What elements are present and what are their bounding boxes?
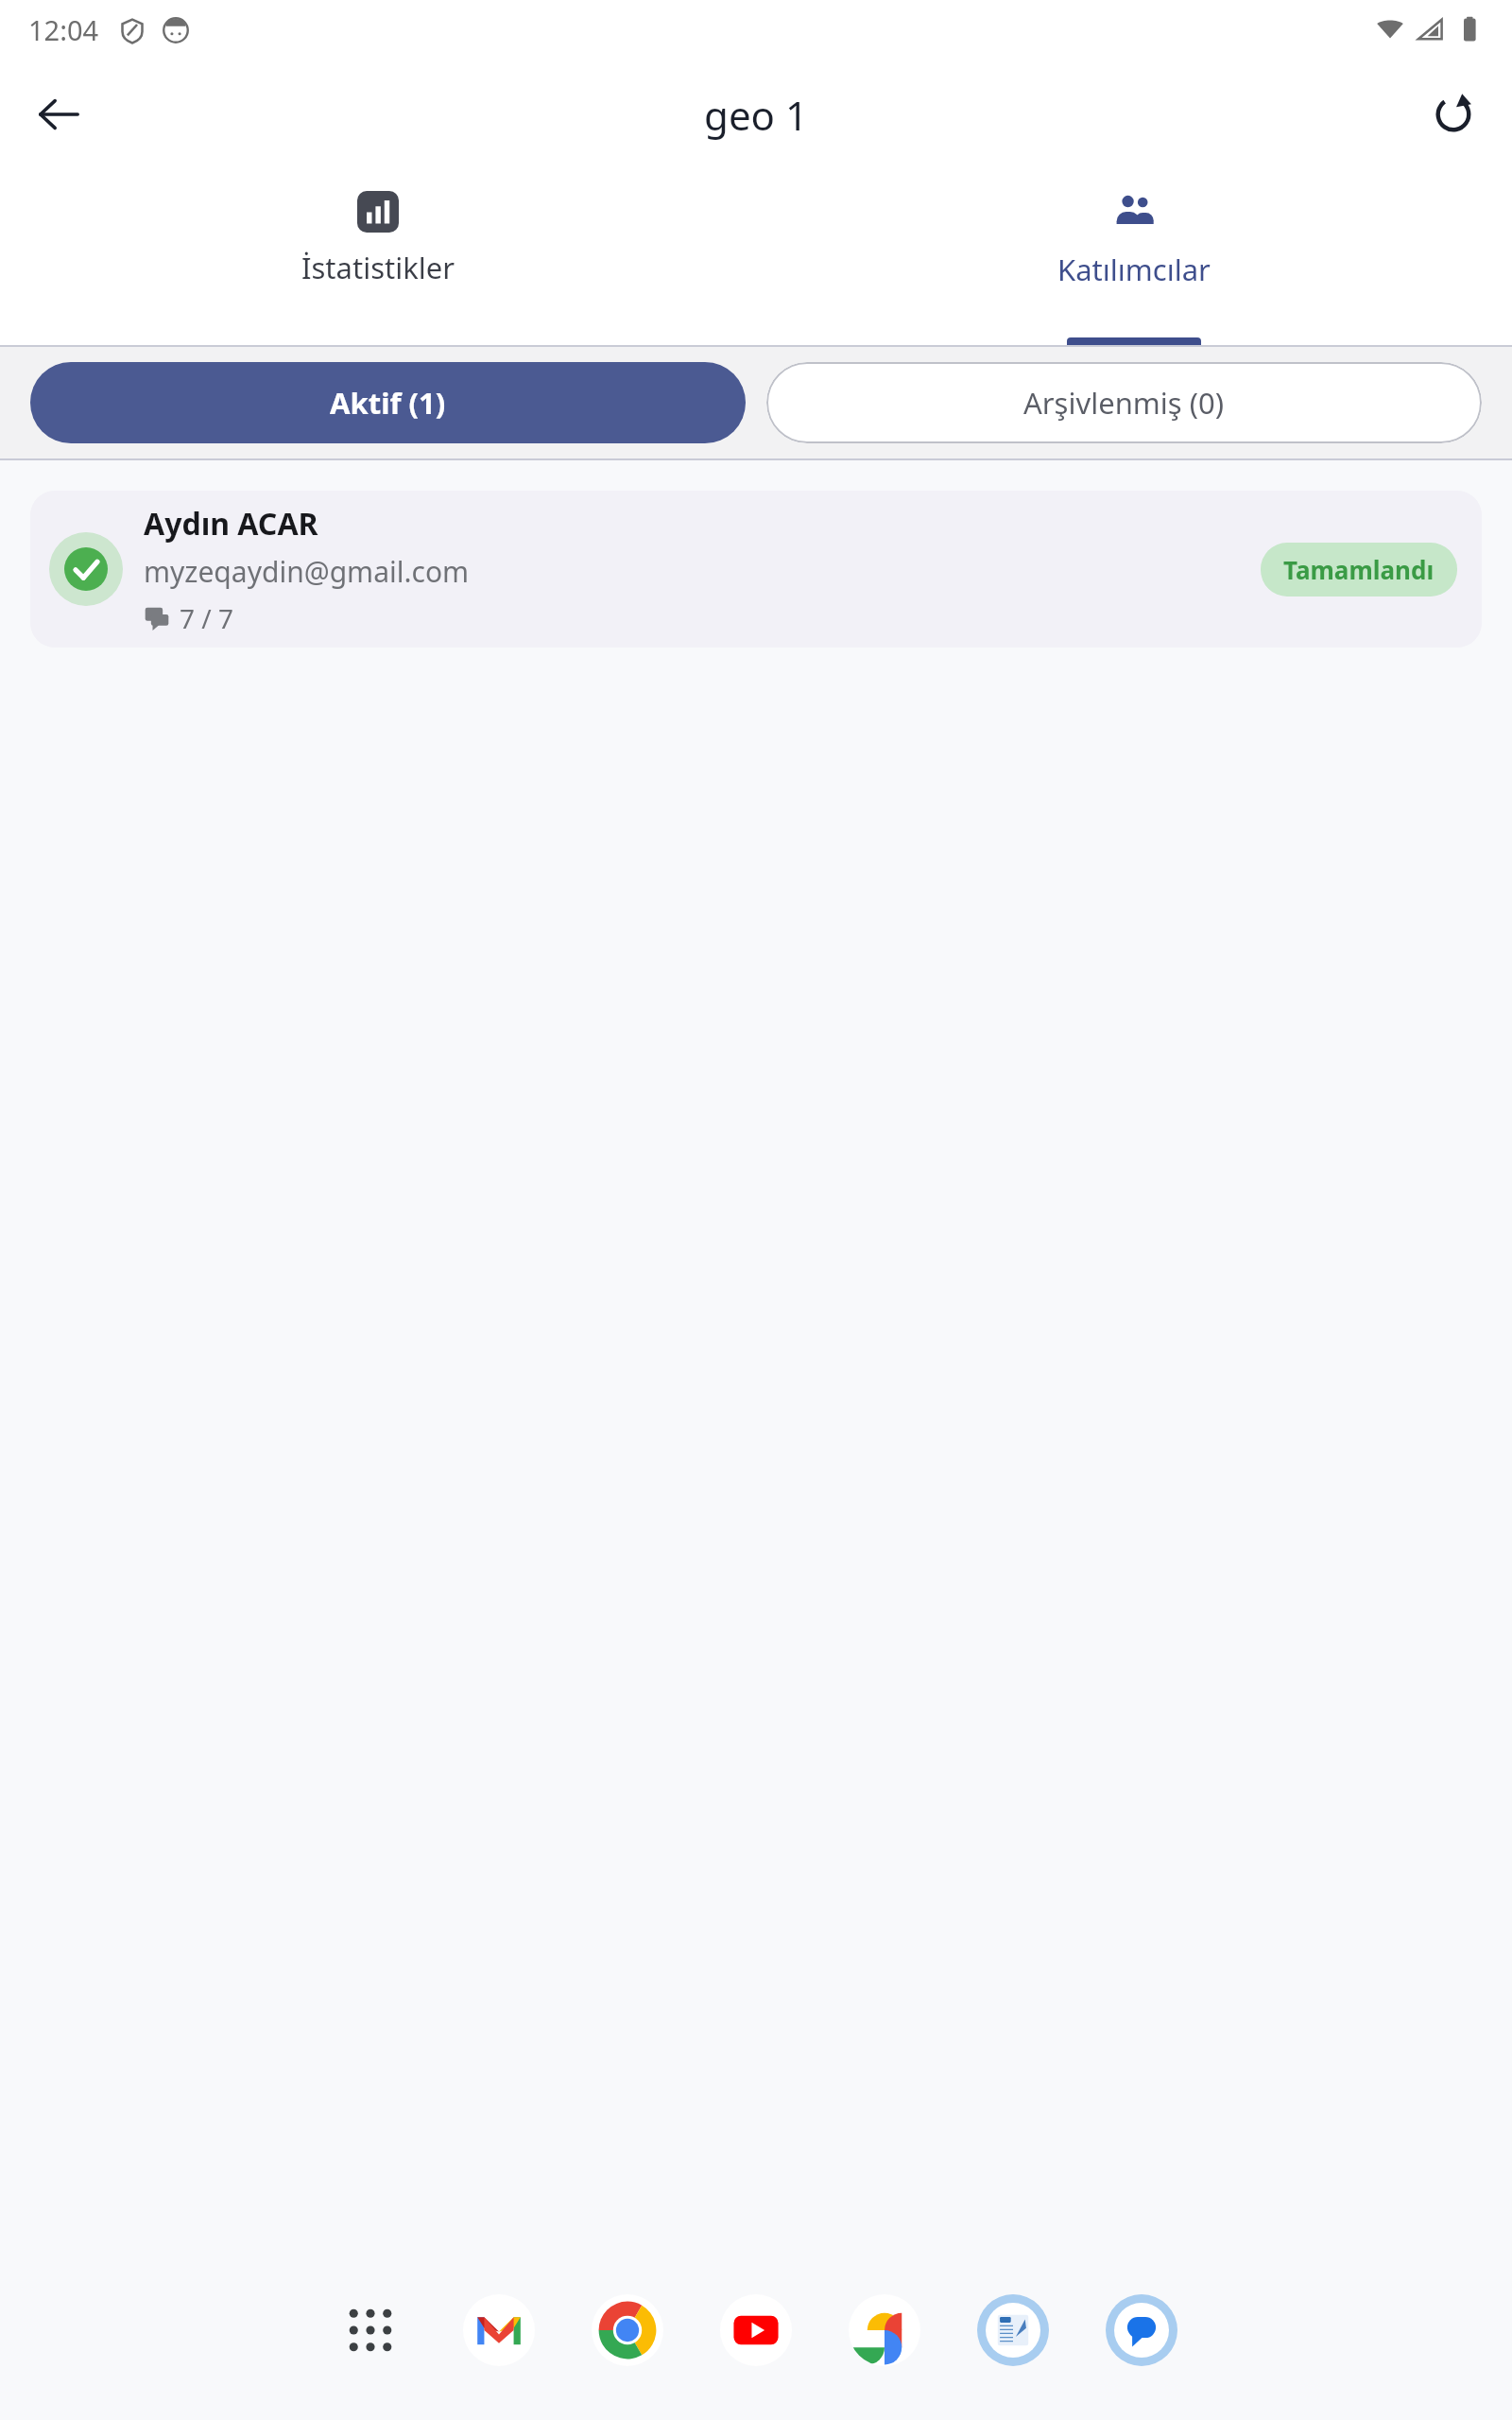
staticText: Katılımcılar bbox=[1057, 250, 1211, 289]
button[interactable]: All apps bbox=[335, 2294, 406, 2366]
button[interactable]: Chrome bbox=[592, 2294, 663, 2366]
button[interactable]: İstatistikler bbox=[0, 170, 756, 345]
button[interactable]: Aktif (1) bbox=[30, 362, 746, 443]
staticText: Arşivlenmiş (0) bbox=[1023, 383, 1225, 423]
button[interactable]: Aydın ACAR bbox=[30, 491, 1482, 648]
button[interactable]: Gmail bbox=[463, 2294, 535, 2366]
staticText: myzeqaydin@gmail.com bbox=[144, 552, 470, 591]
button[interactable]: Google Photos bbox=[849, 2294, 920, 2366]
button[interactable]: PDF app bbox=[977, 2294, 1049, 2366]
button[interactable]: Messages bbox=[1106, 2294, 1177, 2366]
button[interactable]: Tamamlandı bbox=[1261, 543, 1457, 596]
button[interactable]: YouTube bbox=[720, 2294, 792, 2366]
staticText: 12:04 bbox=[28, 11, 99, 48]
staticText: 7 / 7 bbox=[180, 600, 234, 636]
staticText: Aydın ACAR bbox=[144, 503, 318, 544]
button[interactable]: Arşivlenmiş (0) bbox=[766, 362, 1482, 443]
staticText: Tamamlandı bbox=[1283, 553, 1435, 586]
button[interactable]: Back bbox=[21, 77, 96, 152]
button[interactable]: Katılımcılar bbox=[756, 170, 1512, 345]
staticText: geo 1 bbox=[704, 88, 808, 142]
staticText: İstatistikler bbox=[301, 248, 455, 287]
button[interactable]: Refresh bbox=[1416, 77, 1491, 152]
staticText: Aktif (1) bbox=[330, 383, 446, 423]
